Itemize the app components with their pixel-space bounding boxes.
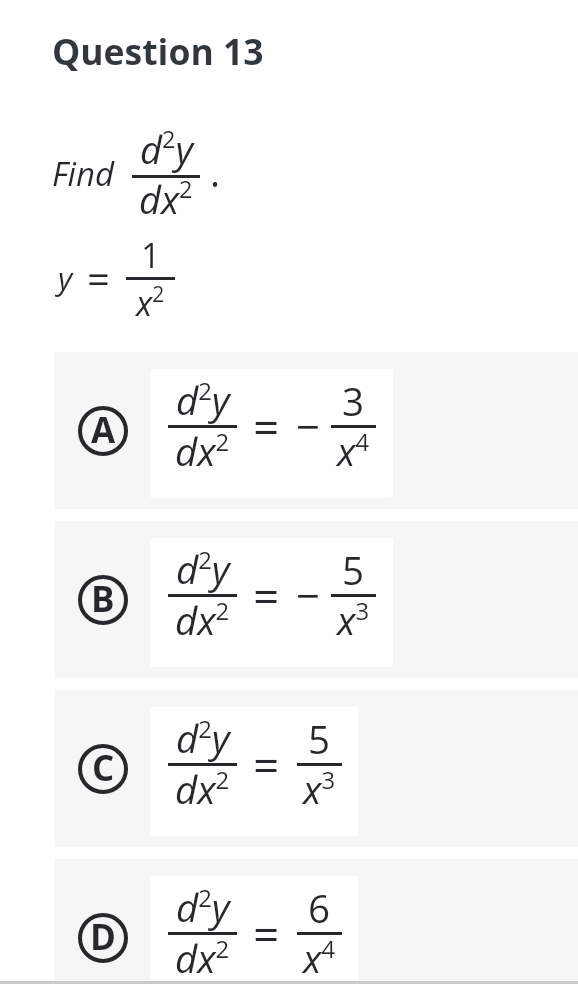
button[interactable]: C [55, 690, 578, 847]
staticText: dx2 [175, 425, 230, 478]
staticText: = [87, 251, 110, 305]
staticText: d2y [176, 712, 230, 765]
staticText: − [296, 566, 321, 623]
staticText: x4 [303, 932, 336, 985]
staticText: x3 [337, 594, 370, 647]
staticText: d2y [140, 123, 193, 175]
staticText: = [253, 733, 280, 796]
staticText: D [90, 913, 116, 961]
staticText: − [296, 397, 321, 454]
button[interactable]: D [55, 859, 578, 988]
staticText: 5 [308, 713, 331, 765]
staticText: d2y [176, 374, 230, 427]
staticText: dx2 [175, 594, 230, 647]
staticText: = [253, 902, 280, 965]
staticText: C [92, 744, 115, 792]
staticText: . [210, 146, 221, 198]
staticText: x2 [136, 279, 165, 325]
staticText: 3 [342, 375, 365, 427]
staticText: = [253, 395, 280, 458]
staticText: Find [52, 151, 115, 196]
staticText: dx2 [175, 763, 230, 816]
staticText: d2y [176, 881, 230, 934]
staticText: A [91, 406, 116, 454]
staticText: y [58, 257, 73, 299]
button[interactable]: A [55, 352, 578, 509]
staticText: = [253, 564, 280, 627]
staticText: 6 [308, 882, 331, 934]
staticText: x4 [337, 425, 370, 478]
staticText: x3 [303, 763, 336, 816]
staticText: 5 [342, 544, 365, 596]
staticText: Question 13 [52, 27, 264, 75]
staticText: d2y [176, 543, 230, 596]
staticText: B [91, 575, 115, 623]
button[interactable]: B [55, 521, 578, 678]
staticText: dx2 [175, 932, 230, 985]
staticText: 1 [141, 232, 161, 278]
staticText: dx2 [139, 173, 193, 225]
